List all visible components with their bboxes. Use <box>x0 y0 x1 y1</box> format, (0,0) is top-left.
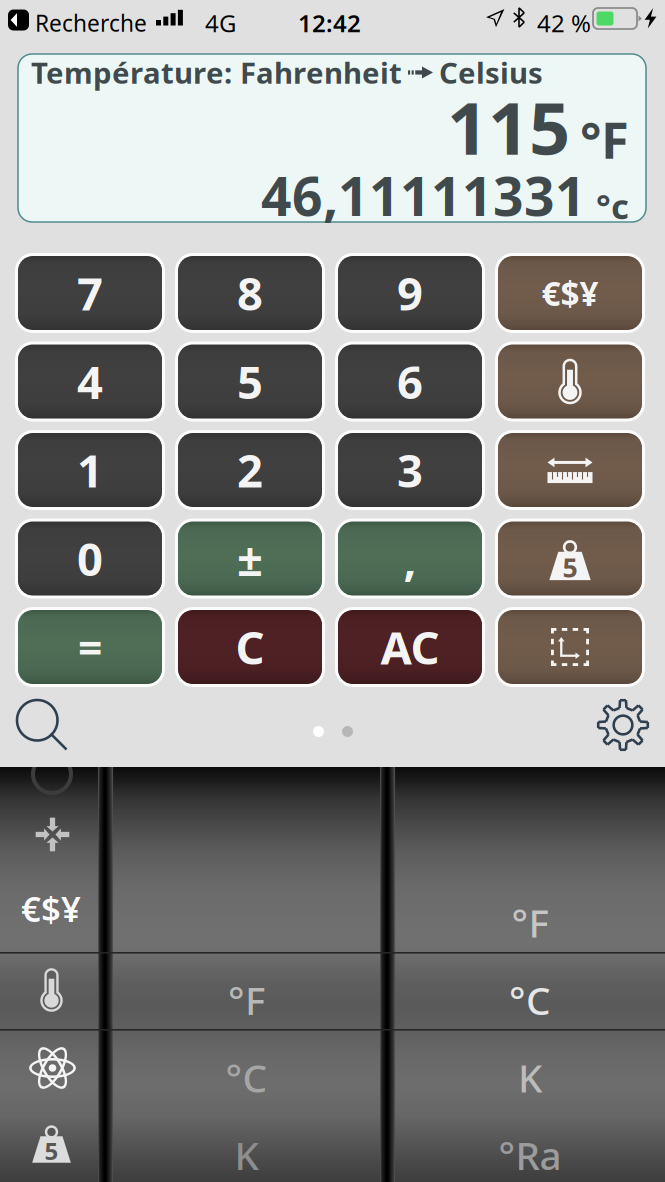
button[interactable] <box>15 341 165 421</box>
button[interactable] <box>175 430 325 510</box>
button[interactable] <box>335 253 485 333</box>
staticText: €$¥ <box>541 271 598 315</box>
staticText: K <box>518 1052 542 1103</box>
staticText: C <box>235 617 264 677</box>
staticText: 5 <box>44 1135 58 1167</box>
staticText: 5 <box>562 549 577 585</box>
staticText: €$¥ <box>21 885 81 931</box>
staticText: 4G <box>205 7 236 39</box>
button[interactable] <box>15 430 165 510</box>
staticText: °F <box>228 974 265 1026</box>
staticText: AC <box>380 617 439 677</box>
staticText: Recherche <box>35 8 147 38</box>
button[interactable]: Area <box>495 607 645 687</box>
staticText: 2 <box>237 440 263 500</box>
staticText: °c <box>596 183 629 229</box>
button[interactable] <box>335 607 485 687</box>
button[interactable]: Settings <box>588 694 658 756</box>
staticText: 115 <box>447 79 570 175</box>
button[interactable]: Search <box>9 694 81 756</box>
button[interactable] <box>335 430 485 510</box>
button[interactable] <box>335 341 485 421</box>
staticText: ± <box>237 528 263 589</box>
button[interactable] <box>15 518 165 598</box>
staticText: Température: Fahrenheit <box>31 53 402 92</box>
staticText: 6 <box>397 351 423 412</box>
button[interactable] <box>15 607 165 687</box>
staticText: °C <box>225 1052 267 1103</box>
staticText: 12:42 <box>298 7 361 39</box>
button[interactable]: Back to Recherche <box>7 3 145 37</box>
button[interactable]: Temperature <box>495 341 645 421</box>
staticText: 9 <box>397 263 423 323</box>
button[interactable] <box>175 607 325 687</box>
staticText: 7 <box>77 263 103 323</box>
staticText: 0 <box>77 528 103 589</box>
staticText: °F <box>580 105 629 173</box>
staticText: , <box>403 528 416 589</box>
staticText: 1 <box>77 440 103 500</box>
button[interactable] <box>175 341 325 421</box>
staticText: °F <box>511 897 548 948</box>
staticText: 46,11111331 <box>261 160 586 231</box>
button[interactable]: Length <box>495 430 645 510</box>
staticText: 42 % <box>537 7 591 39</box>
staticText: Celsius <box>439 53 543 92</box>
button[interactable] <box>15 253 165 333</box>
staticText: 3 <box>397 440 423 500</box>
staticText: 5 <box>237 351 263 412</box>
staticText: 4 <box>77 351 103 412</box>
button[interactable]: Weight <box>495 518 645 598</box>
button[interactable] <box>175 253 325 333</box>
staticText: °C <box>509 974 551 1026</box>
button[interactable] <box>175 518 325 598</box>
button[interactable] <box>335 518 485 598</box>
staticText: K <box>234 1129 258 1181</box>
staticText: = <box>78 619 102 675</box>
staticText: °Ra <box>498 1129 561 1181</box>
staticText: 8 <box>237 263 263 323</box>
button[interactable] <box>495 253 645 333</box>
